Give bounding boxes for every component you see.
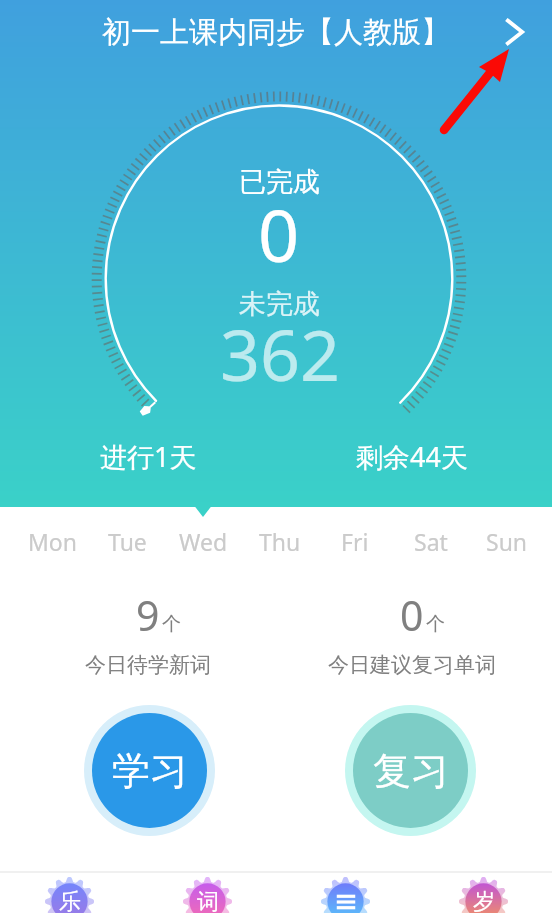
button[interactable]: 进行1天 — [78, 438, 218, 475]
staticText: 学习 — [112, 747, 188, 795]
staticText: 0 — [400, 587, 424, 631]
button[interactable]: Thu — [242, 520, 317, 562]
staticText: 个 — [426, 612, 445, 636]
staticText: 已完成 — [239, 165, 320, 199]
staticText: 9 — [136, 587, 160, 631]
staticText: 362 — [220, 306, 341, 401]
staticText: 剩余44天 — [356, 438, 468, 475]
staticText: Wed — [179, 526, 228, 557]
button[interactable]: 岁 — [414, 873, 552, 913]
button[interactable]: 三 — [276, 873, 414, 913]
button[interactable]: Change book — [486, 0, 544, 64]
staticText: 进行1天 — [100, 438, 197, 475]
button[interactable]: Tue — [90, 520, 165, 562]
staticText: Sun — [486, 526, 528, 557]
staticText: 词 — [197, 888, 219, 913]
staticText: 个 — [162, 612, 181, 636]
staticText: Sat — [414, 526, 448, 557]
staticText: Fri — [341, 526, 369, 557]
button[interactable]: 剩余44天 — [342, 438, 482, 475]
staticText: 今日建议复习单词 — [328, 652, 496, 678]
button[interactable]: Fri — [317, 520, 392, 562]
staticText: Thu — [259, 526, 301, 557]
button[interactable]: 词 — [138, 873, 276, 913]
button[interactable]: 乐 — [0, 873, 138, 913]
staticText: 未完成 — [239, 287, 320, 321]
staticText: 岁 — [473, 888, 495, 913]
button[interactable]: Mon — [15, 520, 90, 562]
button[interactable]: Sun — [469, 520, 544, 562]
staticText: 今日待学新词 — [85, 652, 211, 678]
staticText: Mon — [28, 526, 77, 557]
button[interactable]: 学习 — [84, 705, 215, 836]
button[interactable]: 9 — [78, 587, 218, 678]
staticText: 0 — [258, 185, 300, 283]
button[interactable]: 0 — [322, 587, 502, 678]
button[interactable]: Wed — [166, 520, 241, 562]
staticText: Tue — [108, 526, 147, 557]
staticText: 乐 — [59, 888, 81, 913]
staticText: 复习 — [373, 747, 449, 795]
staticText: 初一上课内同步【人教版】 — [102, 14, 450, 51]
button[interactable]: 复习 — [345, 705, 476, 836]
button[interactable]: Sat — [393, 520, 468, 562]
